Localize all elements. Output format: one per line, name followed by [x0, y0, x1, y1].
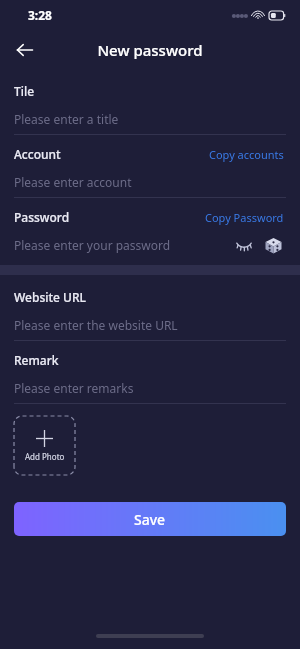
button[interactable]: Tile [14, 78, 286, 134]
button[interactable]: Remark [14, 341, 286, 403]
button[interactable]: Show password [231, 232, 257, 258]
staticText: Tile [14, 83, 35, 99]
staticText: Account [14, 146, 61, 162]
staticText: Password [14, 209, 70, 225]
button[interactable]: Account [14, 135, 286, 197]
button[interactable]: Copy Password [203, 208, 286, 227]
staticText: Please enter the website URL [14, 317, 178, 333]
staticText: Save [134, 510, 166, 529]
button[interactable]: Add Photo [14, 416, 75, 475]
staticText: Please enter remarks [14, 380, 134, 396]
staticText: Please enter account [14, 174, 132, 190]
button[interactable]: Generate password [260, 232, 286, 258]
button[interactable]: Copy accounts [207, 145, 286, 164]
staticText: New password [97, 40, 203, 60]
button[interactable]: Save [14, 502, 286, 536]
staticText: Website URL [14, 289, 86, 305]
button[interactable]: Website URL [14, 284, 286, 340]
staticText: Add Photo [25, 451, 65, 462]
staticText: Please enter a title [14, 111, 119, 127]
staticText: 3:28 [28, 7, 52, 23]
staticText: Please enter your password [14, 237, 171, 253]
button[interactable]: Please enter your password [14, 237, 231, 253]
staticText: Copy accounts [209, 147, 284, 162]
staticText: Copy Password [205, 210, 284, 225]
staticText: Remark [14, 352, 59, 368]
button[interactable]: Back [8, 33, 42, 67]
